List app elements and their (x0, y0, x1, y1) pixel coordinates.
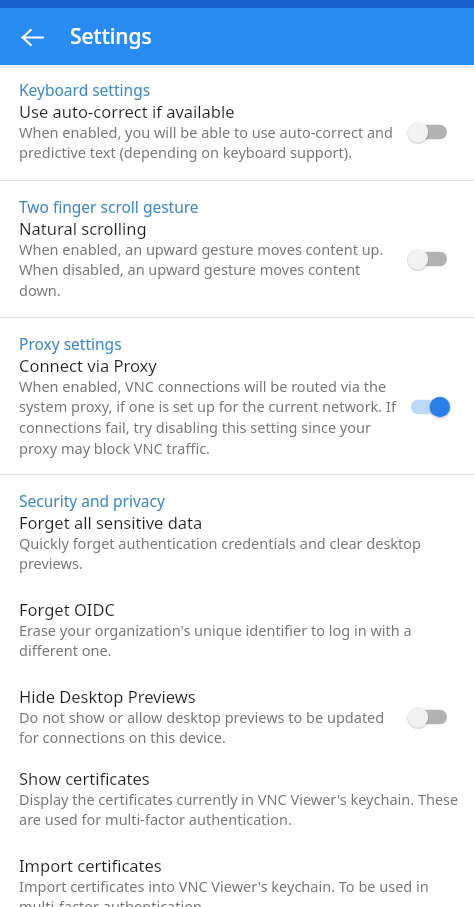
button[interactable]: Toggle off (406, 242, 460, 276)
staticText: Erase your organization's unique identif… (19, 620, 460, 661)
staticText: Do not show or allow desktop previews to… (19, 707, 402, 748)
button[interactable]: Back (10, 15, 54, 59)
staticText: Two finger scroll gesture (19, 196, 199, 217)
button[interactable]: Toggle off (406, 700, 460, 734)
button[interactable]: Show certificates (0, 767, 474, 830)
button[interactable]: Forget OIDC (0, 598, 474, 661)
button[interactable]: Import certificates (0, 854, 474, 907)
button[interactable]: Hide Desktop Previews (0, 685, 474, 748)
staticText: Natural scrolling (19, 217, 147, 239)
staticText: When enabled, an upward gesture moves co… (19, 239, 402, 301)
staticText: Show certificates (19, 767, 150, 789)
button[interactable]: Connect via Proxy (0, 354, 474, 459)
staticText: Display the certificates currently in VN… (19, 789, 460, 830)
button[interactable]: Toggle off (406, 115, 460, 149)
staticText: Forget OIDC (19, 598, 115, 620)
staticText: Use auto-correct if available (19, 100, 235, 122)
staticText: When enabled, you will be able to use au… (19, 122, 402, 163)
button[interactable]: Toggle on (406, 390, 460, 424)
staticText: Import certificates (19, 854, 162, 876)
button[interactable]: Use auto-correct if available (0, 100, 474, 163)
staticText: Security and privacy (19, 490, 165, 511)
staticText: When enabled, VNC connections will be ro… (19, 376, 402, 459)
staticText: Settings (70, 22, 152, 51)
staticText: Hide Desktop Previews (19, 685, 196, 707)
staticText: Keyboard settings (19, 79, 151, 100)
staticText: Connect via Proxy (19, 354, 157, 376)
button[interactable]: Natural scrolling (0, 217, 474, 301)
staticText: Proxy settings (19, 333, 122, 354)
button[interactable]: Forget all sensitive data (0, 511, 474, 574)
staticText: Forget all sensitive data (19, 511, 203, 533)
staticText: Import certificates into VNC Viewer's ke… (19, 876, 460, 907)
staticText: Quickly forget authentication credential… (19, 533, 460, 574)
